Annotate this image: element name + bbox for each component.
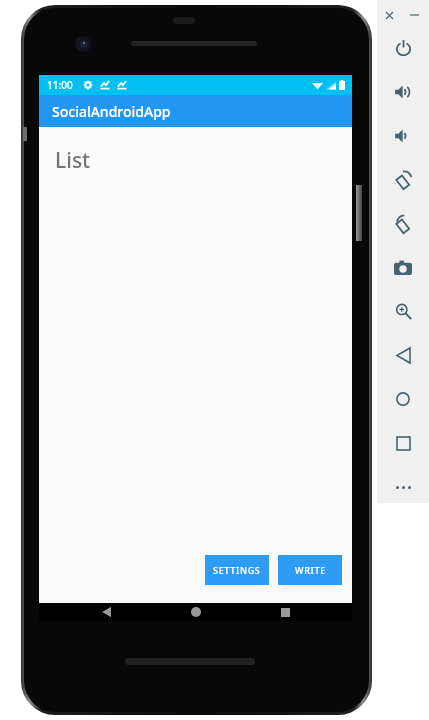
staticText: 11:00 (47, 78, 73, 92)
button[interactable]: Overview (390, 430, 416, 456)
button[interactable]: Home (185, 603, 207, 621)
button[interactable]: Rotate left (390, 167, 416, 193)
button[interactable]: SETTINGS (205, 555, 269, 585)
button[interactable]: Close (381, 7, 397, 23)
staticText: SocialAndroidApp (52, 102, 171, 121)
button[interactable]: Volume up (390, 79, 416, 105)
button[interactable]: Home (390, 386, 416, 412)
staticText: SETTINGS (213, 564, 261, 576)
button[interactable]: Back (95, 603, 117, 621)
button[interactable]: WRITE (278, 555, 342, 585)
staticText: List (55, 146, 91, 175)
button[interactable]: Volume down (390, 123, 416, 149)
button[interactable]: Minimize (406, 7, 422, 23)
staticText: WRITE (295, 564, 326, 576)
button[interactable]: Zoom (390, 298, 416, 324)
button[interactable]: Recent apps (274, 603, 296, 621)
button[interactable]: More (390, 474, 416, 500)
button[interactable]: Take screenshot (390, 254, 416, 280)
button[interactable]: Rotate right (390, 211, 416, 237)
button[interactable]: Power (390, 35, 416, 61)
button[interactable]: Back (390, 342, 416, 368)
